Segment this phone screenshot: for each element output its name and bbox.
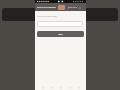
staticText: What's your first name? (37, 15, 57, 17)
button[interactable]: Next (37, 31, 84, 37)
staticText: Great Tournament (37, 6, 56, 9)
button[interactable]: Tab 4 (66, 85, 73, 90)
staticText: Next (58, 33, 63, 36)
button[interactable] (37, 21, 83, 27)
button[interactable]: More options (78, 6, 81, 9)
button[interactable]: Tab 5 (75, 85, 82, 90)
button[interactable]: Tab 2 (48, 85, 55, 90)
button[interactable]: Tab 3 (57, 85, 64, 90)
staticText: Jesse Park (68, 6, 77, 9)
button[interactable]: Tab 1 (39, 85, 46, 90)
